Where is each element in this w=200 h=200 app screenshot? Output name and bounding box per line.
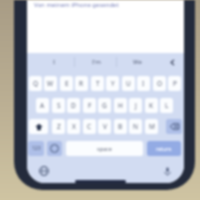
button[interactable]: E xyxy=(60,76,73,91)
button[interactable]: I'm xyxy=(76,54,116,70)
staticText: Q xyxy=(33,79,39,88)
button[interactable]: We xyxy=(117,54,157,70)
staticText: We xyxy=(133,58,142,66)
button[interactable]: W xyxy=(44,76,57,91)
button[interactable]: P xyxy=(168,76,181,91)
button[interactable]: Emoji xyxy=(47,141,62,156)
button[interactable]: Q xyxy=(29,76,42,91)
staticText: Z xyxy=(57,122,61,131)
staticText: I xyxy=(53,58,56,66)
staticText: J xyxy=(135,101,137,110)
button[interactable]: H xyxy=(114,98,127,113)
staticText: U xyxy=(126,79,131,88)
staticText: I'm xyxy=(92,58,101,66)
staticText: H xyxy=(118,101,123,110)
staticText: L xyxy=(165,101,169,110)
button[interactable]: C xyxy=(83,119,96,134)
staticText: 123 xyxy=(32,145,41,152)
button[interactable]: return xyxy=(147,141,181,156)
button[interactable]: G xyxy=(98,98,111,113)
staticText: D xyxy=(71,101,76,110)
button[interactable]: J xyxy=(129,98,142,113)
staticText: C xyxy=(87,122,92,131)
button[interactable]: space xyxy=(66,141,143,156)
staticText: Von meinem iPhone gesendet xyxy=(34,1,119,9)
button[interactable]: R xyxy=(75,76,88,91)
button[interactable]: More suggestions xyxy=(165,54,179,70)
staticText: F xyxy=(88,101,92,110)
button[interactable]: N xyxy=(129,119,142,134)
button[interactable]: M xyxy=(145,119,158,134)
staticText: W xyxy=(47,79,54,88)
button[interactable]: T xyxy=(91,76,104,91)
button[interactable]: X xyxy=(67,119,80,134)
staticText: X xyxy=(72,122,76,131)
button[interactable]: Backspace xyxy=(166,119,182,134)
staticText: G xyxy=(102,101,107,110)
button[interactable]: A xyxy=(36,98,49,113)
staticText: O xyxy=(157,79,163,88)
button[interactable]: Z xyxy=(52,119,65,134)
staticText: E xyxy=(65,79,69,88)
button[interactable]: L xyxy=(160,98,173,113)
button[interactable]: Y xyxy=(106,76,119,91)
button[interactable]: V xyxy=(98,119,111,134)
staticText: V xyxy=(103,122,107,131)
staticText: A xyxy=(40,101,45,110)
staticText: P xyxy=(173,79,177,88)
staticText: M xyxy=(149,122,155,131)
staticText: B xyxy=(118,122,123,131)
button[interactable]: Shift xyxy=(29,119,48,134)
staticText: space xyxy=(97,145,112,152)
button[interactable]: D xyxy=(67,98,80,113)
staticText: S xyxy=(57,101,61,110)
button[interactable]: Dictate xyxy=(160,164,174,178)
button[interactable]: Change keyboard xyxy=(37,164,51,178)
button[interactable]: F xyxy=(83,98,96,113)
button[interactable]: 123 xyxy=(28,141,44,156)
staticText: Y xyxy=(111,79,115,88)
staticText: K xyxy=(149,101,154,110)
staticText: I xyxy=(142,79,145,88)
button[interactable]: S xyxy=(52,98,65,113)
button[interactable]: I xyxy=(137,76,150,91)
staticText: T xyxy=(96,79,100,88)
button[interactable]: U xyxy=(122,76,135,91)
button[interactable]: B xyxy=(114,119,127,134)
button[interactable]: O xyxy=(153,76,166,91)
button[interactable]: K xyxy=(145,98,158,113)
staticText: N xyxy=(133,122,138,131)
staticText: R xyxy=(79,79,84,88)
staticText: return xyxy=(156,145,172,152)
